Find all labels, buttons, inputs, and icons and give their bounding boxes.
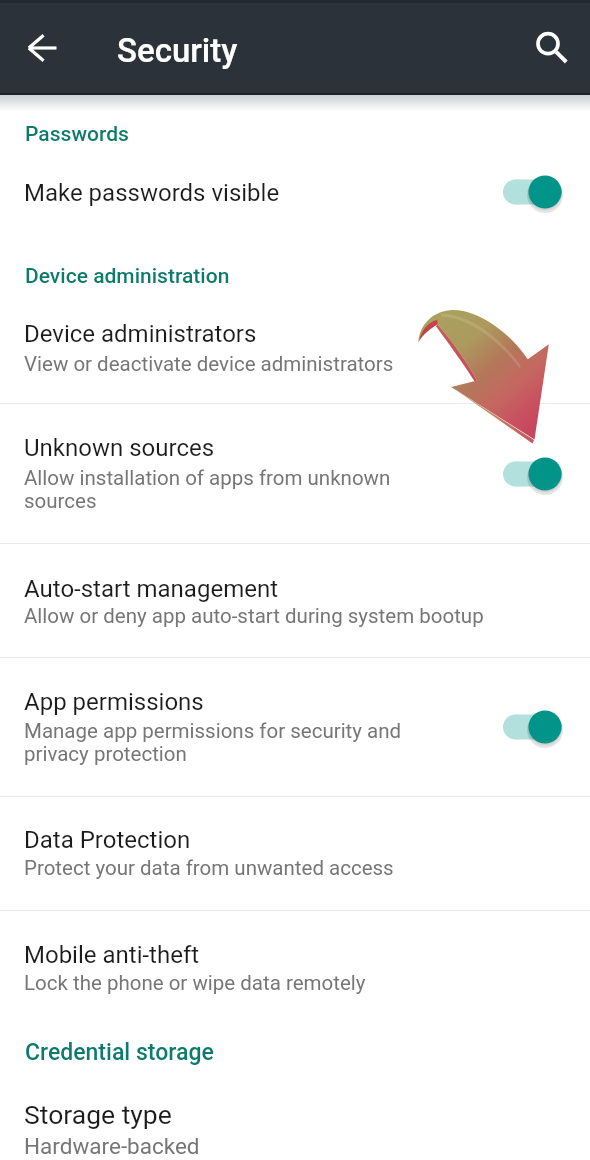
button[interactable] <box>0 910 590 1015</box>
button[interactable] <box>0 404 590 543</box>
staticText: Credential storage <box>25 1039 214 1066</box>
staticText: Lock the phone or wipe data remotely <box>24 972 366 995</box>
button[interactable]: Toggle setting <box>496 165 576 219</box>
staticText: Device administrators <box>24 320 257 348</box>
staticText: Hardware-backed <box>24 1134 200 1159</box>
staticText: Allow or deny app auto-start during syst… <box>24 605 484 628</box>
button[interactable]: Toggle setting <box>496 447 576 501</box>
button[interactable] <box>0 543 590 658</box>
staticText: Device administration <box>25 264 230 289</box>
staticText: App permissions <box>24 688 204 716</box>
button[interactable] <box>0 1080 590 1160</box>
staticText: Data Protection <box>24 826 191 854</box>
staticText: View or deactivate device administrators <box>24 353 394 376</box>
button[interactable]: Search <box>524 20 572 68</box>
button[interactable] <box>0 658 590 797</box>
button[interactable]: Navigate up <box>18 24 66 72</box>
staticText: Passwords <box>25 122 129 147</box>
button[interactable]: Toggle setting <box>496 700 576 754</box>
button[interactable] <box>0 796 590 910</box>
staticText: Mobile anti-theft <box>24 941 200 969</box>
staticText: Make passwords visible <box>24 179 280 207</box>
staticText: Manage app permissions for security and … <box>24 720 414 766</box>
button[interactable] <box>0 290 590 404</box>
staticText: Security <box>117 31 238 70</box>
staticText: Unknown sources <box>24 434 215 462</box>
staticText: Allow installation of apps from unknown … <box>24 467 404 513</box>
staticText: Storage type <box>24 1099 172 1130</box>
staticText: Auto-start management <box>24 575 279 603</box>
staticText: Protect your data from unwanted access <box>24 857 394 880</box>
button[interactable] <box>0 95 590 203</box>
